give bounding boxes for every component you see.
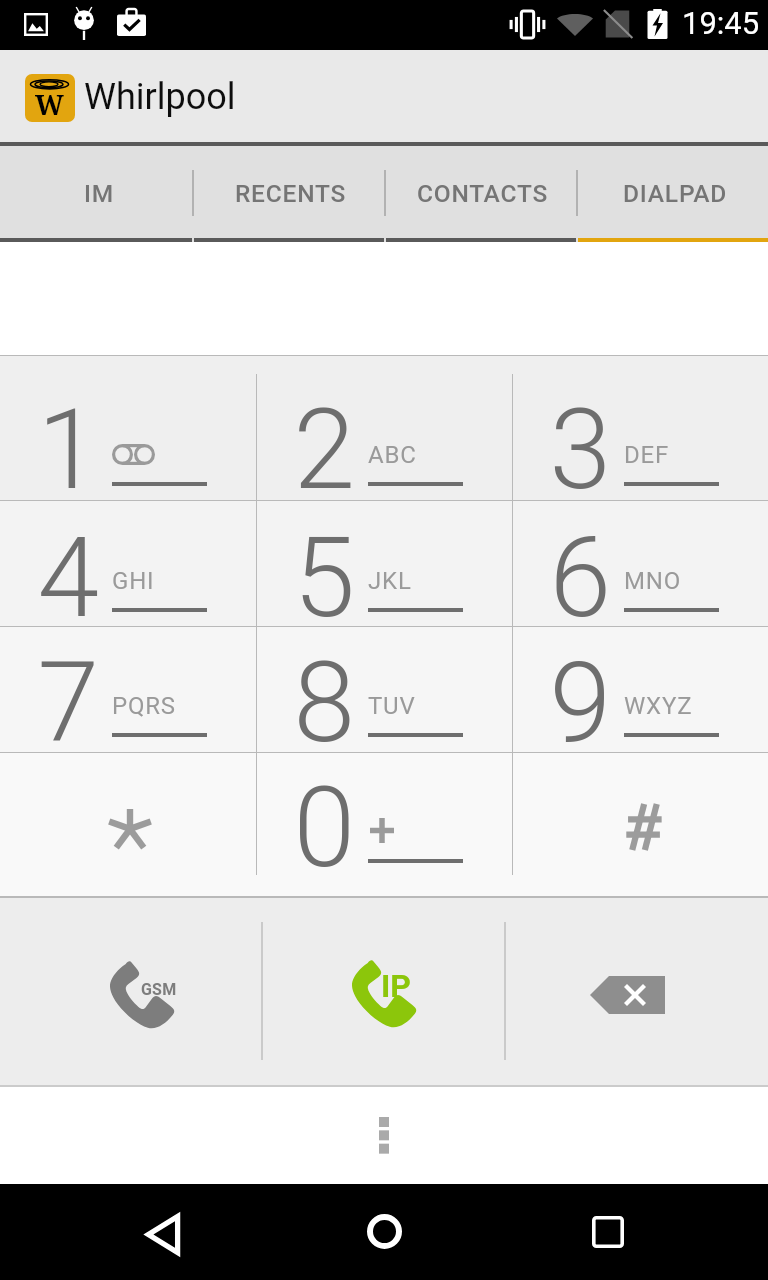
staticText: GHI bbox=[112, 567, 155, 595]
staticText: 5 bbox=[256, 513, 355, 639]
staticText: 8 bbox=[256, 638, 355, 764]
button[interactable]: 8 bbox=[256, 626, 512, 752]
button[interactable]: Back bbox=[124, 1196, 196, 1268]
staticText: JKL bbox=[368, 567, 412, 595]
button[interactable]: 4 bbox=[0, 500, 256, 626]
staticText: TUV bbox=[368, 692, 416, 720]
button[interactable]: 0 bbox=[256, 752, 512, 897]
staticText: CONTACTS bbox=[417, 179, 549, 208]
button[interactable]: 6 bbox=[512, 500, 768, 626]
button[interactable]: Recent apps bbox=[572, 1196, 644, 1268]
button[interactable]: RECENTS bbox=[192, 146, 384, 242]
button[interactable]: CONTACTS bbox=[384, 146, 576, 242]
button[interactable]: 3 bbox=[512, 355, 768, 500]
staticText: 1 bbox=[0, 385, 99, 515]
staticText: 6 bbox=[512, 513, 611, 639]
staticText: MNO bbox=[624, 567, 681, 595]
staticText: 4 bbox=[0, 513, 99, 639]
staticText: IM bbox=[84, 179, 114, 208]
staticText: DIALPAD bbox=[623, 179, 728, 208]
staticText: PQRS bbox=[112, 692, 176, 720]
button[interactable] bbox=[512, 752, 768, 897]
button[interactable]: IP call bbox=[262, 897, 504, 1087]
button[interactable]: 7 bbox=[0, 626, 256, 752]
staticText: 3 bbox=[512, 385, 611, 515]
button[interactable]: GSM call bbox=[0, 897, 262, 1087]
staticText: WXYZ bbox=[624, 692, 693, 720]
button[interactable]: 5 bbox=[256, 500, 512, 626]
button[interactable]: 1 bbox=[0, 355, 256, 500]
button[interactable]: Home bbox=[348, 1196, 420, 1268]
button[interactable]: DIALPAD bbox=[576, 146, 768, 242]
button[interactable]: Backspace bbox=[504, 897, 768, 1087]
button[interactable]: 9 bbox=[512, 626, 768, 752]
staticText: 9 bbox=[512, 638, 611, 764]
staticText: RECENTS bbox=[235, 179, 347, 208]
button[interactable]: 2 bbox=[256, 355, 512, 500]
staticText: Whirlpool bbox=[84, 76, 236, 118]
staticText: 2 bbox=[256, 385, 355, 515]
staticText: DEF bbox=[624, 441, 670, 469]
staticText: W bbox=[35, 86, 64, 122]
staticText: 0 bbox=[256, 763, 355, 893]
button[interactable] bbox=[0, 752, 256, 897]
button[interactable]: More options bbox=[360, 1112, 408, 1160]
button[interactable]: IM bbox=[0, 146, 192, 242]
staticText: 19:45 bbox=[682, 5, 760, 41]
staticText: ABC bbox=[368, 441, 417, 469]
staticText: GSM bbox=[141, 980, 177, 999]
staticText: IP bbox=[381, 967, 411, 1005]
staticText: 7 bbox=[0, 638, 99, 764]
